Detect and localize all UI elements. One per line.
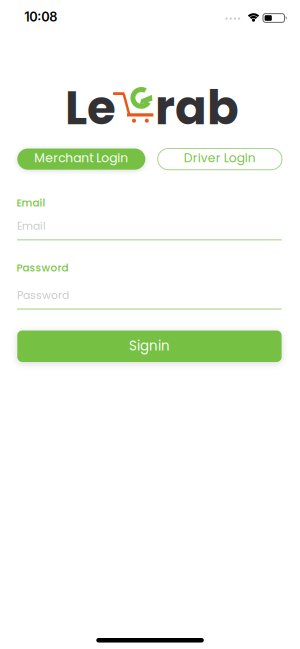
staticText: Password bbox=[16, 261, 68, 275]
staticText: Driver Login bbox=[184, 149, 256, 166]
staticText: Le bbox=[65, 75, 116, 140]
staticText: rab bbox=[155, 75, 239, 140]
staticText: 10:08 bbox=[24, 9, 57, 25]
button[interactable]: Merchant Login bbox=[17, 148, 145, 170]
staticText: Email bbox=[17, 219, 46, 233]
staticText: Signin bbox=[129, 337, 170, 355]
button[interactable]: Signin bbox=[17, 330, 282, 362]
staticText: Password bbox=[17, 288, 69, 303]
staticText: Merchant Login bbox=[34, 149, 128, 166]
button[interactable]: Driver Login bbox=[158, 148, 282, 170]
button[interactable]: Password bbox=[17, 286, 282, 310]
button[interactable]: Email bbox=[17, 217, 282, 240]
staticText: Email bbox=[16, 196, 45, 210]
